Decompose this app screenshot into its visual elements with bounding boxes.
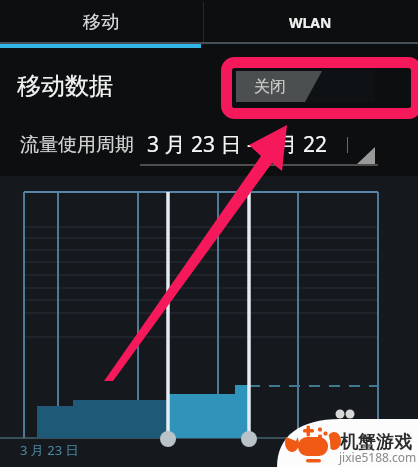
staticText: 流量使用周期 [20,133,134,157]
button[interactable]: 移动 [0,0,202,44]
staticText: 关闭 [254,77,286,97]
staticText: WLAN [289,13,332,32]
staticText: 移动数据 [17,71,113,101]
button[interactable]: Select billing cycle [357,147,375,164]
staticText: 机蟹游戏 [340,431,412,454]
staticText: 3 月 23 日 [20,441,79,459]
button[interactable]: Mobile data toggle, off [235,71,375,102]
staticText: 移动 [83,11,119,34]
staticText: jixie5188.com [339,449,417,465]
button[interactable]: WLAN [202,0,418,44]
staticText: 3 月 23 日 - 4 月 22 [147,130,328,159]
